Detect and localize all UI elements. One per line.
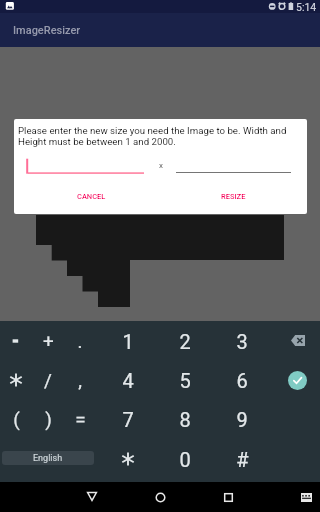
staticText: ( <box>13 408 20 430</box>
button[interactable]: = <box>65 400 95 438</box>
staticText: ImageResizer <box>13 24 81 37</box>
staticText: 1 <box>122 330 134 353</box>
button[interactable]: 4 <box>113 361 143 399</box>
staticText: / <box>44 369 52 391</box>
button[interactable]: 9 <box>227 400 257 438</box>
button[interactable]: Backspace <box>283 324 312 357</box>
button[interactable]: Width <box>28 158 144 174</box>
staticText: Please enter the new size you need the I… <box>18 125 287 147</box>
button[interactable]: Recent apps <box>219 488 237 506</box>
button[interactable]: 1 <box>113 322 143 360</box>
button[interactable]: 2 <box>170 322 200 360</box>
staticText: ) <box>45 408 52 430</box>
button[interactable]: Home <box>151 488 169 506</box>
staticText: x <box>159 161 163 170</box>
staticText: English <box>33 453 63 464</box>
staticText: # <box>236 448 249 471</box>
staticText: . <box>77 330 83 352</box>
button[interactable]: 5 <box>170 361 200 399</box>
staticText: 8 <box>179 408 191 431</box>
button[interactable]: 6 <box>227 361 257 399</box>
staticText: 5 <box>179 369 191 392</box>
button[interactable] <box>113 440 143 478</box>
staticText: 0 <box>179 448 191 471</box>
button[interactable]: 3 <box>227 322 257 360</box>
button[interactable]: / <box>33 361 63 399</box>
button[interactable]: CANCEL <box>69 187 114 205</box>
staticText: 9 <box>236 408 248 431</box>
staticText: + <box>43 330 54 352</box>
staticText: 3 <box>236 330 248 353</box>
button[interactable]: ( <box>1 400 31 438</box>
staticText: 7 <box>122 408 134 431</box>
button[interactable]: English <box>2 451 94 465</box>
staticText: CANCEL <box>77 192 106 201</box>
button[interactable]: 0 <box>170 440 200 478</box>
button[interactable]: Height <box>176 157 291 173</box>
button[interactable]: RESIZE <box>213 187 254 205</box>
button[interactable]: Switch keyboard <box>297 489 315 505</box>
staticText: 2 <box>179 330 191 353</box>
button[interactable]: 8 <box>170 400 200 438</box>
button[interactable] <box>1 322 31 360</box>
button[interactable]: Done <box>288 371 307 390</box>
staticText: = <box>75 408 86 430</box>
button[interactable] <box>1 361 31 399</box>
button[interactable]: . <box>65 322 95 360</box>
button[interactable]: , <box>65 361 95 399</box>
button[interactable]: # <box>227 440 257 478</box>
staticText: 6 <box>236 369 248 392</box>
button[interactable]: 7 <box>113 400 143 438</box>
button[interactable]: Back <box>83 487 101 505</box>
staticText: RESIZE <box>221 192 246 201</box>
button[interactable]: + <box>33 322 63 360</box>
button[interactable]: ) <box>33 400 63 438</box>
staticText: , <box>78 369 82 391</box>
staticText: 4 <box>122 369 134 392</box>
staticText: 5:14 <box>296 1 317 13</box>
